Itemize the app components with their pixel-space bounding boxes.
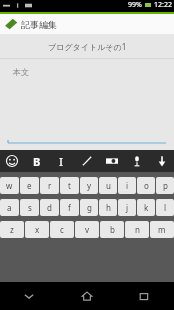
button[interactable]: k <box>137 199 155 216</box>
staticText: m <box>158 224 166 235</box>
staticText: e <box>27 180 32 191</box>
staticText: c <box>60 224 64 235</box>
button[interactable]: Mic <box>124 150 149 172</box>
button[interactable]: s <box>20 199 39 216</box>
button[interactable]: Back <box>0 282 58 310</box>
staticText: w <box>6 180 13 191</box>
staticText: 99% <box>128 0 142 10</box>
button[interactable]: c <box>50 221 74 238</box>
button[interactable]: j <box>118 199 136 216</box>
button[interactable]: r <box>40 177 59 194</box>
staticText: s <box>28 202 32 213</box>
staticText: 12:22 <box>154 0 172 10</box>
button[interactable]: a <box>0 199 19 216</box>
button[interactable]: b <box>100 221 124 238</box>
staticText: h <box>106 202 111 213</box>
button[interactable]: t <box>60 177 79 194</box>
staticText: d <box>47 202 52 213</box>
staticText: g <box>87 202 92 213</box>
staticText: ブログタイトルその1 <box>48 41 127 52</box>
button[interactable]: n <box>125 221 149 238</box>
staticText: z <box>10 224 14 235</box>
button[interactable]: Home <box>58 282 116 310</box>
button[interactable]: i <box>118 177 136 194</box>
button[interactable]: f <box>60 199 79 216</box>
button[interactable]: v <box>75 221 99 238</box>
staticText: t <box>68 180 71 191</box>
button[interactable]: p <box>156 177 174 194</box>
button[interactable]: I <box>49 150 74 172</box>
button[interactable]: B <box>24 150 49 172</box>
button[interactable]: Camera <box>99 150 124 172</box>
button[interactable]: m <box>150 221 174 238</box>
staticText: b <box>110 224 115 235</box>
button[interactable]: z <box>0 221 24 238</box>
staticText: 記事編集 <box>21 19 57 30</box>
staticText: y <box>87 180 92 191</box>
button[interactable]: e <box>20 177 39 194</box>
staticText: B <box>33 154 41 169</box>
button[interactable]: d <box>40 199 59 216</box>
button[interactable]: l <box>156 199 174 216</box>
staticText: a <box>7 202 12 213</box>
button[interactable]: x <box>25 221 49 238</box>
button[interactable]: Emoji <box>0 150 24 172</box>
button[interactable]: o <box>137 177 155 194</box>
button[interactable]: Recents <box>116 282 174 310</box>
button[interactable]: y <box>80 177 98 194</box>
staticText: n <box>135 224 140 235</box>
button[interactable]: Pen <box>74 150 99 172</box>
staticText: x <box>35 224 40 235</box>
staticText: l <box>164 202 167 213</box>
staticText: k <box>144 202 149 213</box>
button[interactable]: u <box>99 177 117 194</box>
staticText: I <box>59 154 64 169</box>
staticText: u <box>106 180 111 191</box>
staticText: p <box>163 180 168 191</box>
staticText: r <box>48 180 52 191</box>
staticText: 本文 <box>13 67 29 77</box>
staticText: v <box>85 224 90 235</box>
button[interactable]: h <box>99 199 117 216</box>
staticText: j <box>126 202 129 213</box>
staticText: f <box>68 202 71 213</box>
button[interactable]: g <box>80 199 98 216</box>
staticText: i <box>126 180 129 191</box>
staticText: o <box>144 180 149 191</box>
button[interactable]: Hide keyboard <box>149 150 174 172</box>
button[interactable]: w <box>0 177 19 194</box>
